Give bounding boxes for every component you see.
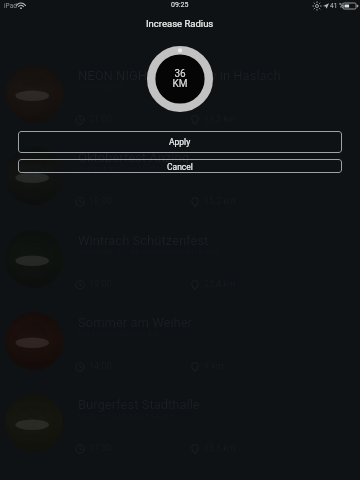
staticText: Festzelt mit Live Musik <box>78 164 160 173</box>
staticText: 09:25 <box>171 1 189 9</box>
button[interactable]: Sommer am Weiher <box>0 310 360 380</box>
staticText: Oktoberfest Anzing <box>78 150 189 165</box>
staticText: Burgerfest Stadthalle <box>78 397 200 412</box>
staticText: iPad <box>4 2 17 10</box>
staticText: Increase Radius <box>146 18 214 29</box>
button[interactable]: Burgerfest Stadthalle <box>0 392 360 462</box>
staticText: Cancel <box>167 162 193 172</box>
button[interactable]: Oktoberfest Anzing <box>0 145 360 215</box>
button[interactable]: Radius slider <box>147 46 213 112</box>
other: Battery <box>343 3 357 9</box>
staticText: Wintrach Schützenfest <box>78 233 209 248</box>
button[interactable]: Apply <box>18 131 342 153</box>
staticText: NEON NIGHT - Die Party in Haslach <box>78 68 281 83</box>
staticText: KM <box>147 78 213 90</box>
staticText: 36 <box>147 68 213 80</box>
other: Wi-Fi <box>17 2 25 9</box>
staticText: Apply <box>169 137 191 147</box>
button[interactable]: NEON NIGHT - Die Party in Haslach <box>0 63 360 133</box>
staticText: 41 % <box>330 2 344 10</box>
staticText: Sommer am Weiher <box>78 315 193 330</box>
button[interactable]: Cancel <box>18 159 342 173</box>
other: Location <box>323 3 329 9</box>
other: Brightness <box>312 1 322 11</box>
